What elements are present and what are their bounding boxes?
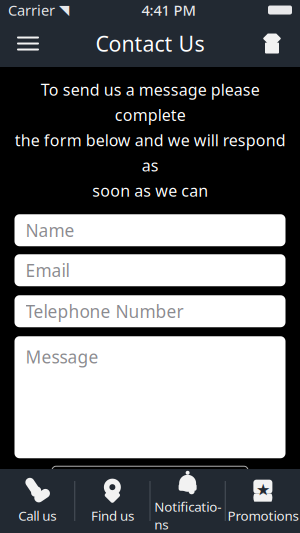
staticText: Notifications (154, 498, 221, 533)
staticText: Email (25, 259, 69, 282)
button[interactable]: Message (14, 336, 285, 458)
staticText: Carrier (8, 0, 55, 20)
staticText: Find us (91, 507, 134, 524)
button[interactable]: Name (14, 214, 285, 246)
staticText: Telephone Number (25, 300, 183, 323)
button[interactable]: ★ (226, 470, 300, 532)
staticText: Name (25, 219, 74, 242)
button[interactable]: Call us (0, 470, 74, 532)
staticText: Message (25, 345, 98, 368)
staticText: 4:41 PM (141, 0, 195, 20)
button[interactable]: Telephone Number (14, 295, 285, 327)
staticText: To send us a message please complete the… (14, 79, 285, 201)
button[interactable]: Home (250, 21, 294, 65)
button[interactable]: Notifications (150, 470, 225, 532)
button[interactable]: Email (14, 254, 285, 286)
staticText: ★ (256, 481, 270, 499)
button[interactable]: Send (52, 466, 248, 506)
staticText: Contact Us (95, 29, 204, 58)
staticText: ◥ (55, 2, 69, 17)
staticText: Send (128, 474, 172, 499)
staticText: Promotions (227, 507, 298, 524)
button[interactable]: Find us (75, 470, 149, 532)
button[interactable]: Menu (6, 21, 50, 65)
staticText: Call us (18, 507, 56, 524)
